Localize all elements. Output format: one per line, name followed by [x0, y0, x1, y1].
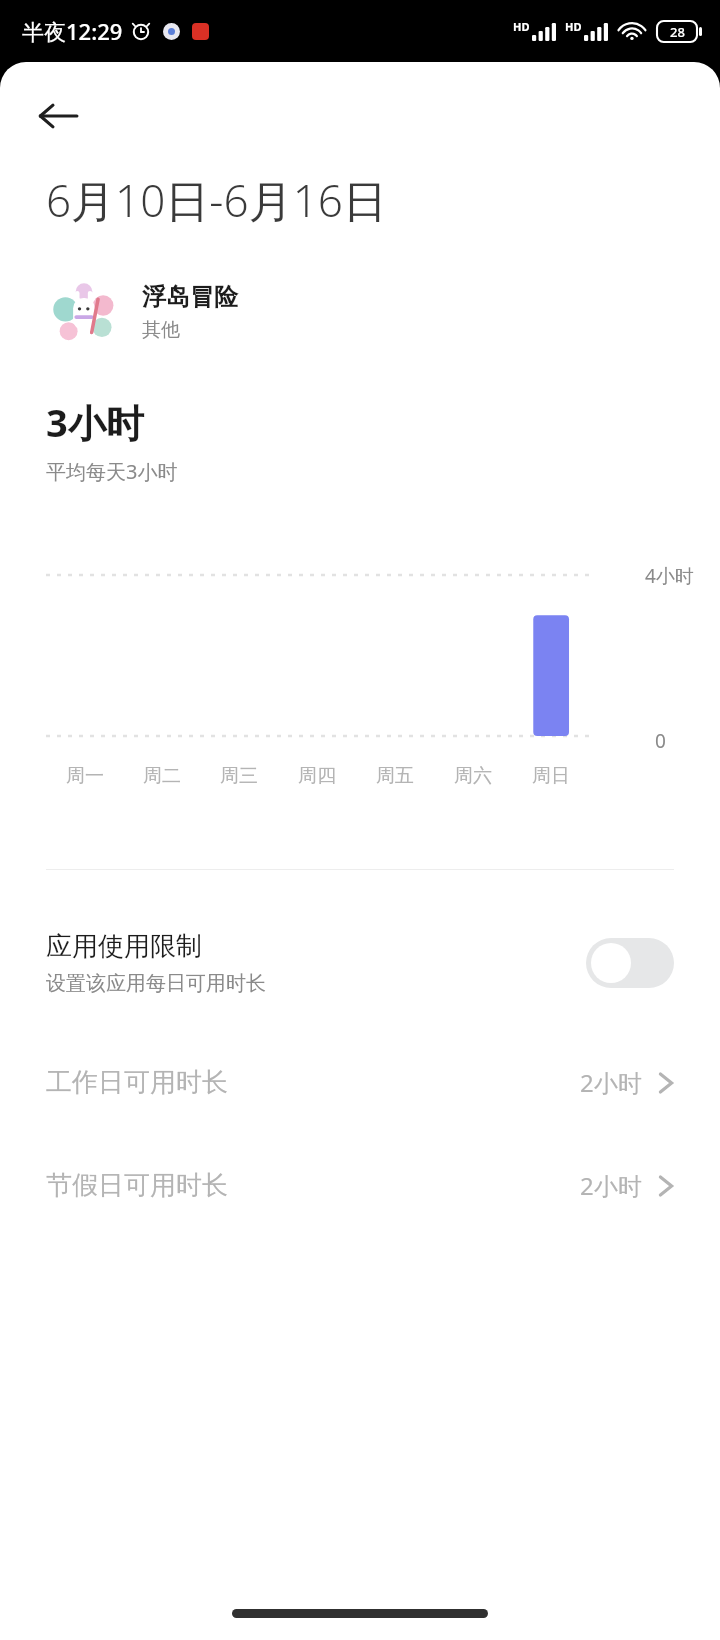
staticText: 周五 [376, 764, 414, 788]
button[interactable]: 应用使用限制 [0, 922, 720, 1004]
staticText: 半夜12:29 [22, 16, 123, 46]
staticText: 周一 [66, 764, 104, 788]
staticText: 周三 [220, 764, 258, 788]
staticText: 工作日可用时长 [46, 1066, 228, 1099]
staticText: 3小时 [46, 396, 144, 448]
staticText: 周六 [454, 764, 492, 788]
button[interactable]: 工作日可用时长 [0, 1058, 720, 1107]
staticText: 2小时 [580, 1066, 642, 1099]
staticText: 平均每天3小时 [46, 458, 178, 485]
staticText: 其他 [142, 318, 180, 342]
staticText: 2小时 [580, 1169, 642, 1202]
staticText: HD [565, 19, 582, 34]
staticText: 周二 [143, 764, 181, 788]
staticText: 应用使用限制 [46, 930, 202, 963]
staticText: 浮岛冒险 [142, 282, 238, 312]
staticText: 6月10日-6月16日 [46, 170, 387, 230]
button[interactable]: 浮岛冒险 [0, 276, 720, 348]
staticText: 周日 [532, 764, 570, 788]
staticText: 0 [655, 728, 666, 754]
staticText: 28 [670, 23, 685, 41]
staticText: 周四 [298, 764, 336, 788]
staticText: 节假日可用时长 [46, 1169, 228, 1202]
staticText: HD [513, 19, 530, 34]
button[interactable]: Back [30, 88, 86, 144]
button[interactable]: 节假日可用时长 [0, 1161, 720, 1210]
button[interactable]: 应用使用限制开关 [586, 938, 674, 988]
staticText: 设置该应用每日可用时长 [46, 971, 266, 996]
staticText: 4小时 [645, 563, 694, 589]
